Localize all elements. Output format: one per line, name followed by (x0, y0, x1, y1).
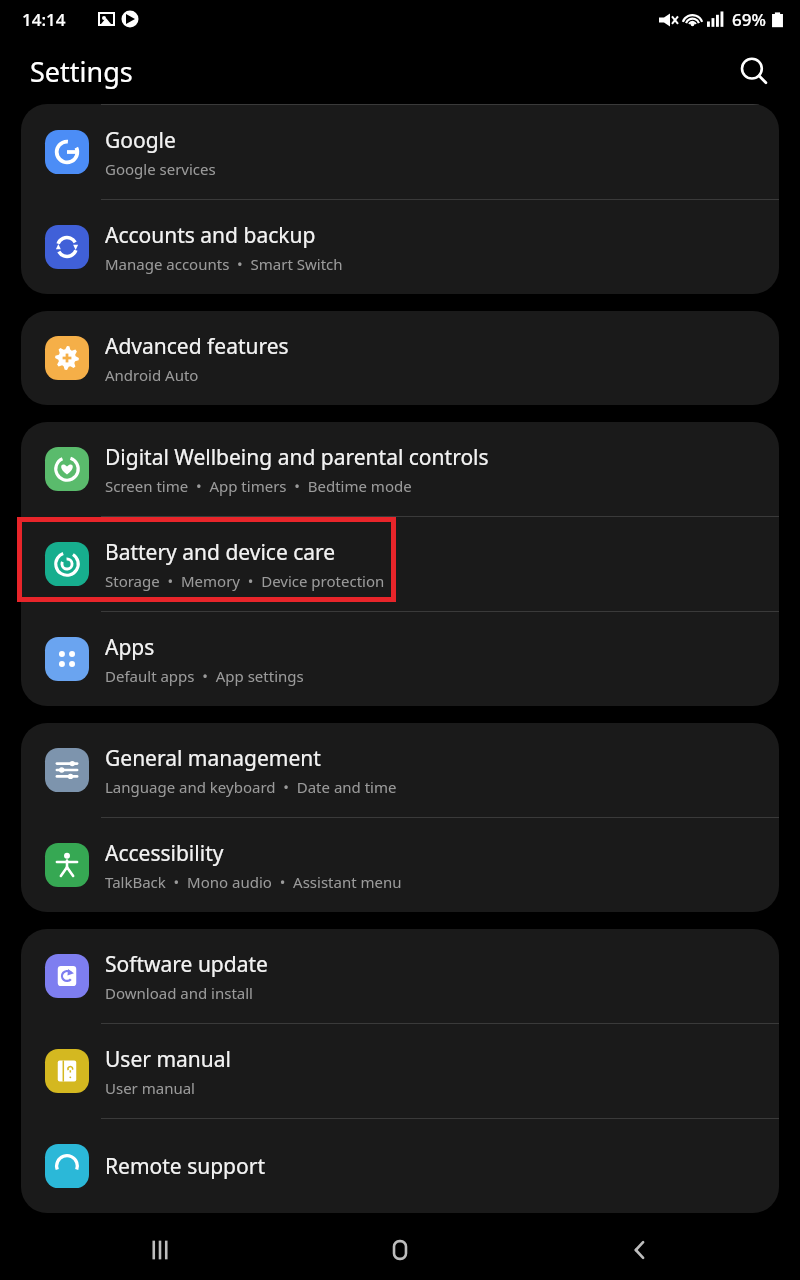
staticText: General management (105, 744, 321, 773)
staticText: Battery and device care (105, 538, 336, 567)
staticText: User manual (105, 1078, 195, 1098)
staticText: Download and install (105, 983, 253, 1003)
staticText: Remote support (105, 1152, 265, 1181)
staticText: Language and keyboard • Date and time (105, 777, 397, 797)
staticText: Storage • Memory • Device protection (105, 571, 385, 591)
button[interactable]: User manual (21, 1024, 779, 1118)
staticText: Apps (105, 633, 155, 662)
staticText: Android Auto (105, 365, 199, 385)
staticText: User manual (105, 1045, 231, 1074)
button[interactable]: Accessibility (21, 818, 779, 912)
button[interactable]: Battery and device care (21, 517, 779, 611)
button[interactable]: Search (730, 47, 778, 95)
staticText: Manage accounts • Smart Switch (105, 254, 343, 274)
button[interactable]: Recent apps (80, 1220, 240, 1280)
button[interactable]: Advanced features (21, 311, 779, 405)
staticText: 69% (732, 8, 766, 31)
staticText: Google services (105, 159, 216, 179)
staticText: Accessibility (105, 839, 224, 868)
button[interactable]: Apps (21, 612, 779, 706)
staticText: Advanced features (105, 332, 289, 361)
button[interactable]: Google (21, 105, 779, 199)
button[interactable]: General management (21, 723, 779, 817)
staticText: Accounts and backup (105, 221, 316, 250)
button[interactable]: Software update (21, 929, 779, 1023)
button[interactable]: Back (560, 1220, 720, 1280)
staticText: Screen time • App timers • Bedtime mode (105, 476, 412, 496)
staticText: Settings (30, 53, 133, 90)
staticText: 14:14 (22, 8, 66, 31)
button[interactable]: Digital Wellbeing and parental controls (21, 422, 779, 516)
button[interactable]: Home (320, 1220, 480, 1280)
staticText: Software update (105, 950, 268, 979)
staticText: Default apps • App settings (105, 666, 304, 686)
button[interactable]: Remote support (21, 1119, 779, 1213)
staticText: TalkBack • Mono audio • Assistant menu (105, 872, 402, 892)
staticText: Google (105, 126, 176, 155)
staticText: Digital Wellbeing and parental controls (105, 443, 489, 472)
button[interactable]: Accounts and backup (21, 200, 779, 294)
